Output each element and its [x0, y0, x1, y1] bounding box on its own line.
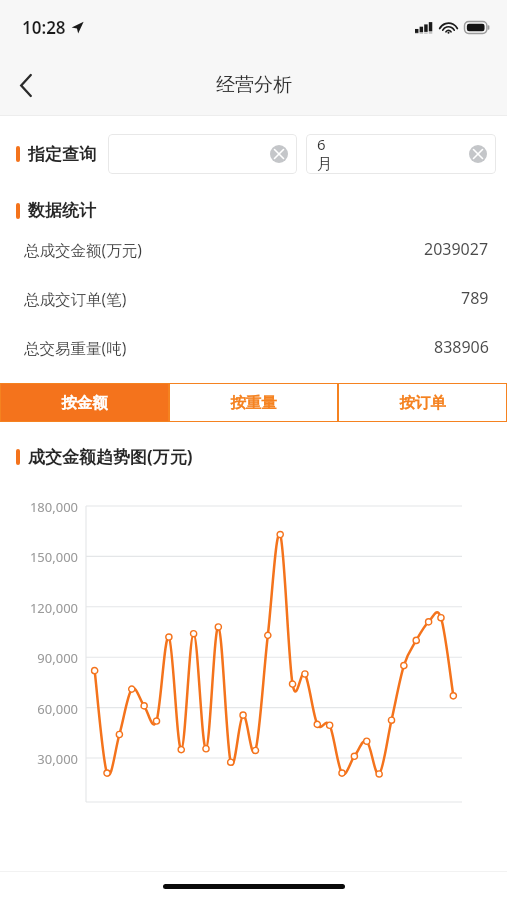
button[interactable]: Back [0, 59, 52, 111]
button[interactable]: 总成交订单(笔) [0, 287, 507, 309]
staticText: 120,000 [14, 599, 78, 617]
staticText: 按重量 [230, 393, 277, 413]
staticText: 总交易重量(吨) [24, 337, 127, 358]
staticText: 10:28 [22, 16, 66, 39]
staticText: 成交金额趋势图(万元) [28, 445, 193, 468]
staticText: 150,000 [14, 548, 78, 566]
button[interactable]: Clear [270, 145, 288, 163]
button[interactable]: 2023年 [108, 134, 297, 174]
staticText: 按订单 [399, 393, 446, 413]
staticText: 180,000 [14, 498, 78, 516]
button[interactable]: 总成交金额(万元) [0, 238, 507, 260]
button[interactable]: 按订单 [338, 383, 507, 422]
staticText: 789 [461, 287, 489, 309]
staticText: 838906 [434, 336, 489, 358]
button[interactable]: Clear [469, 145, 487, 163]
staticText: 总成交金额(万元) [24, 239, 142, 260]
staticText: 30,000 [14, 750, 78, 768]
button[interactable]: 总交易重量(吨) [0, 336, 507, 358]
staticText: 数据统计 [28, 200, 96, 221]
button[interactable]: 按重量 [169, 383, 338, 422]
staticText: 指定查询 [28, 144, 96, 165]
button[interactable]: 按金额 [0, 383, 169, 422]
staticText: 60,000 [14, 700, 78, 718]
staticText: 90,000 [14, 649, 78, 667]
staticText: 经营分析 [216, 73, 292, 97]
staticText: 总成交订单(笔) [24, 288, 127, 309]
staticText: 2039027 [424, 238, 489, 260]
staticText: 按金额 [61, 393, 108, 413]
button[interactable]: 6月 [306, 134, 496, 174]
